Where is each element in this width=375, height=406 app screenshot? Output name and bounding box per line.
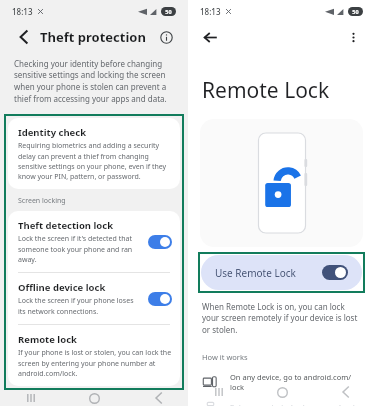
staticText: Lock the screen if it's detected that so… <box>18 234 142 264</box>
button[interactable]: Identity check <box>8 118 180 189</box>
button[interactable]: Home <box>79 390 109 406</box>
staticText: 50 <box>165 8 172 15</box>
button[interactable]: Back <box>329 378 359 406</box>
button[interactable]: Back <box>12 27 32 47</box>
staticText: Screen locking <box>18 196 66 206</box>
button[interactable]: Info <box>156 27 176 47</box>
staticText: Enter your device's phone number to lock… <box>230 402 361 406</box>
staticText: 18:13 <box>12 6 33 17</box>
staticText: 18:13 <box>200 6 221 17</box>
button[interactable]: Use Remote Lock <box>201 255 362 290</box>
button[interactable]: Back <box>142 390 172 406</box>
button[interactable]: Home <box>267 378 297 406</box>
staticText: When Remote Lock is on, you can lock you… <box>202 301 361 336</box>
button[interactable]: Theft detection lock <box>8 211 180 272</box>
button[interactable]: Recent apps <box>16 390 46 406</box>
staticText: Remote lock <box>18 333 77 346</box>
button[interactable]: More options <box>343 27 363 47</box>
button[interactable]: Toggle <box>148 292 172 306</box>
button[interactable]: Offline device lock <box>8 273 180 324</box>
button[interactable]: Toggle <box>148 235 172 249</box>
staticText: On any device, go to android.com/lock <box>230 372 361 392</box>
staticText: Remote Lock <box>202 76 330 105</box>
button[interactable]: Remote lock <box>8 325 180 386</box>
staticText: Requiring biometrics and adding a securi… <box>18 141 170 181</box>
staticText: 50 <box>352 8 359 15</box>
button[interactable]: Back <box>200 27 220 47</box>
staticText: Checking your identity before changing s… <box>14 58 174 105</box>
staticText: If your phone is lost or stolen, you can… <box>18 348 172 378</box>
staticText: Theft protection <box>40 28 146 46</box>
staticText: Theft detection lock <box>18 219 114 232</box>
button[interactable]: Recent apps <box>204 378 234 406</box>
staticText: Use Remote Lock <box>215 266 296 280</box>
staticText: How it works <box>202 352 248 362</box>
staticText: Offline device lock <box>18 281 106 294</box>
staticText: Identity check <box>18 126 87 139</box>
staticText: Lock the screen if your phone loses its … <box>18 296 142 316</box>
